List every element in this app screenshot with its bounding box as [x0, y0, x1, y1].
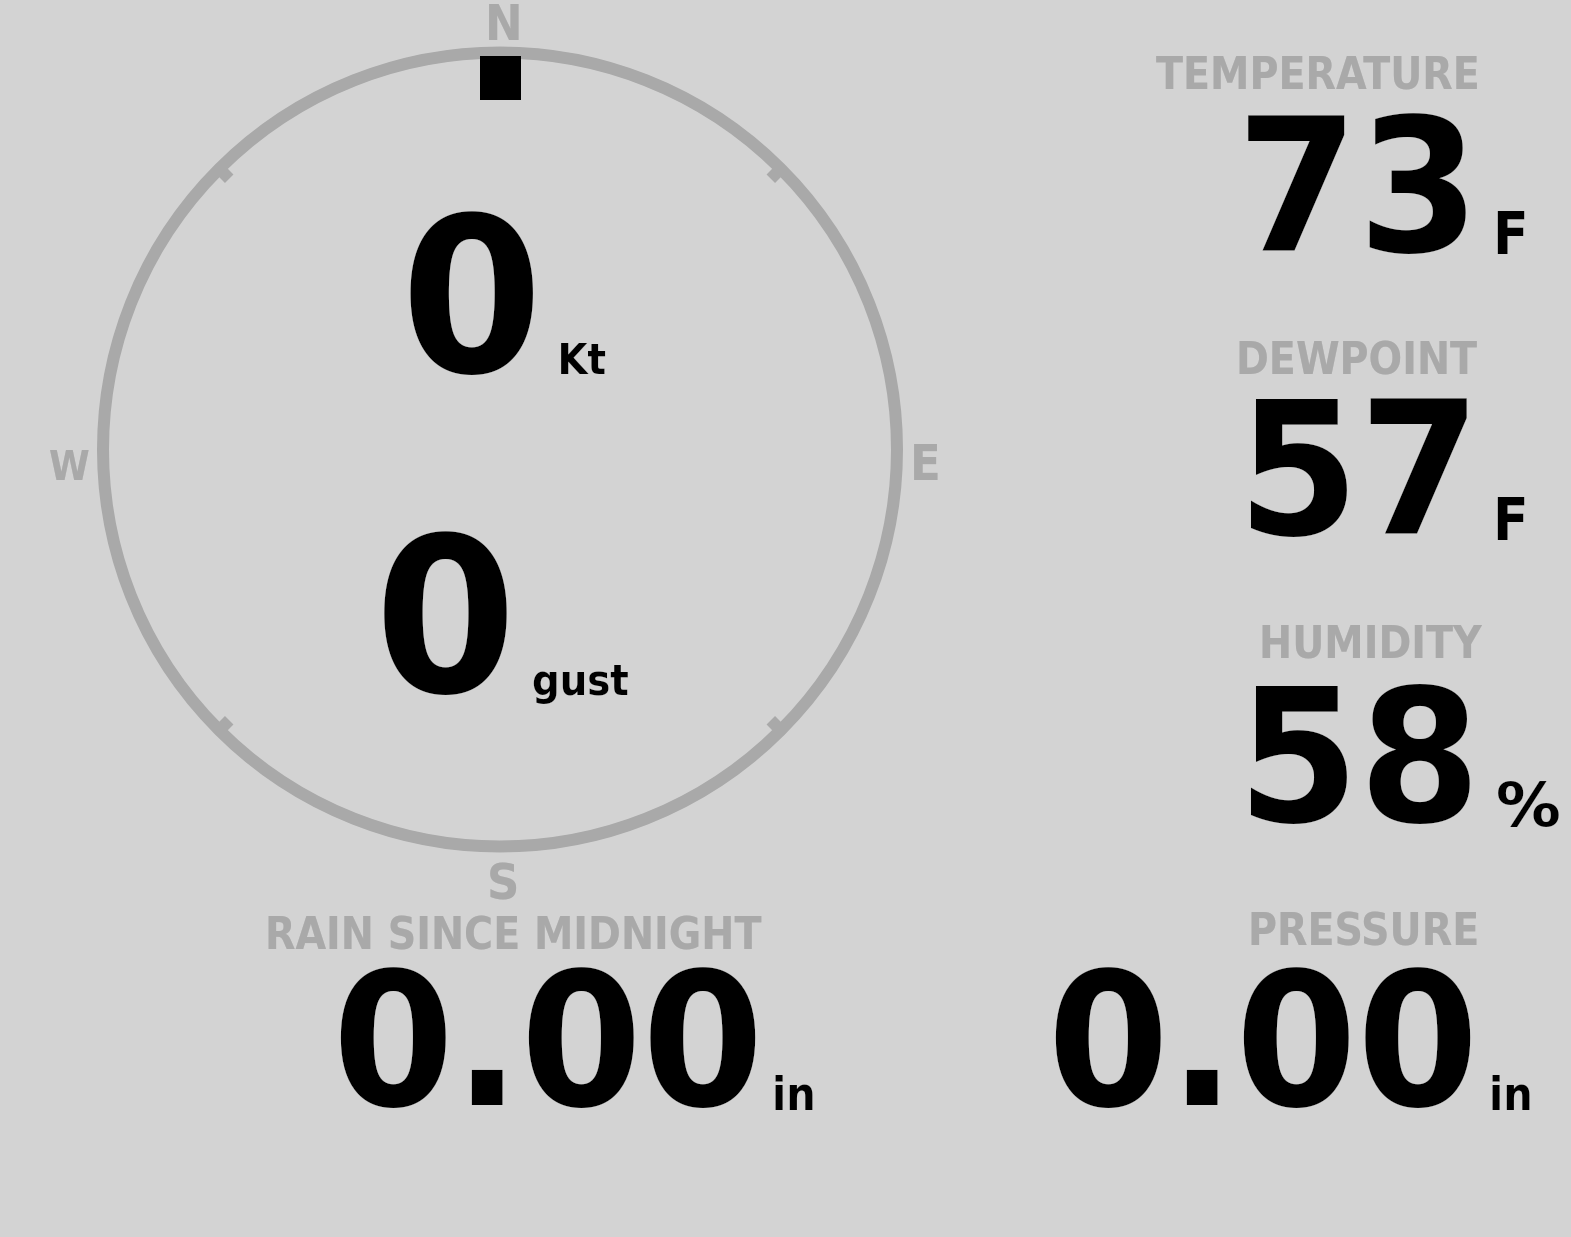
button[interactable]: Rain since midnight 0.00 inches	[230, 890, 850, 1130]
button[interactable]: Humidity 58 percent	[1120, 600, 1571, 850]
button[interactable]: Pressure 0.00 inches	[1000, 890, 1560, 1130]
button[interactable]: Temperature 73 degrees Fahrenheit	[1120, 30, 1571, 280]
button[interactable]: Wind rose, 0 knots, gusting 0, direction…	[60, 10, 950, 900]
button[interactable]: Dewpoint 57 degrees Fahrenheit	[1120, 315, 1571, 565]
